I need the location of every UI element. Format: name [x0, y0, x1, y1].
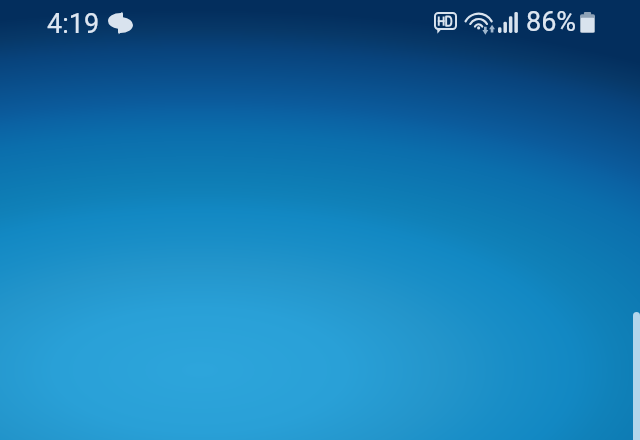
- staticText: 4:19: [47, 8, 100, 40]
- button[interactable]: Edge panel handle: [633, 312, 640, 440]
- staticText: 86%: [526, 6, 577, 38]
- button[interactable]: Clock: [47, 8, 138, 40]
